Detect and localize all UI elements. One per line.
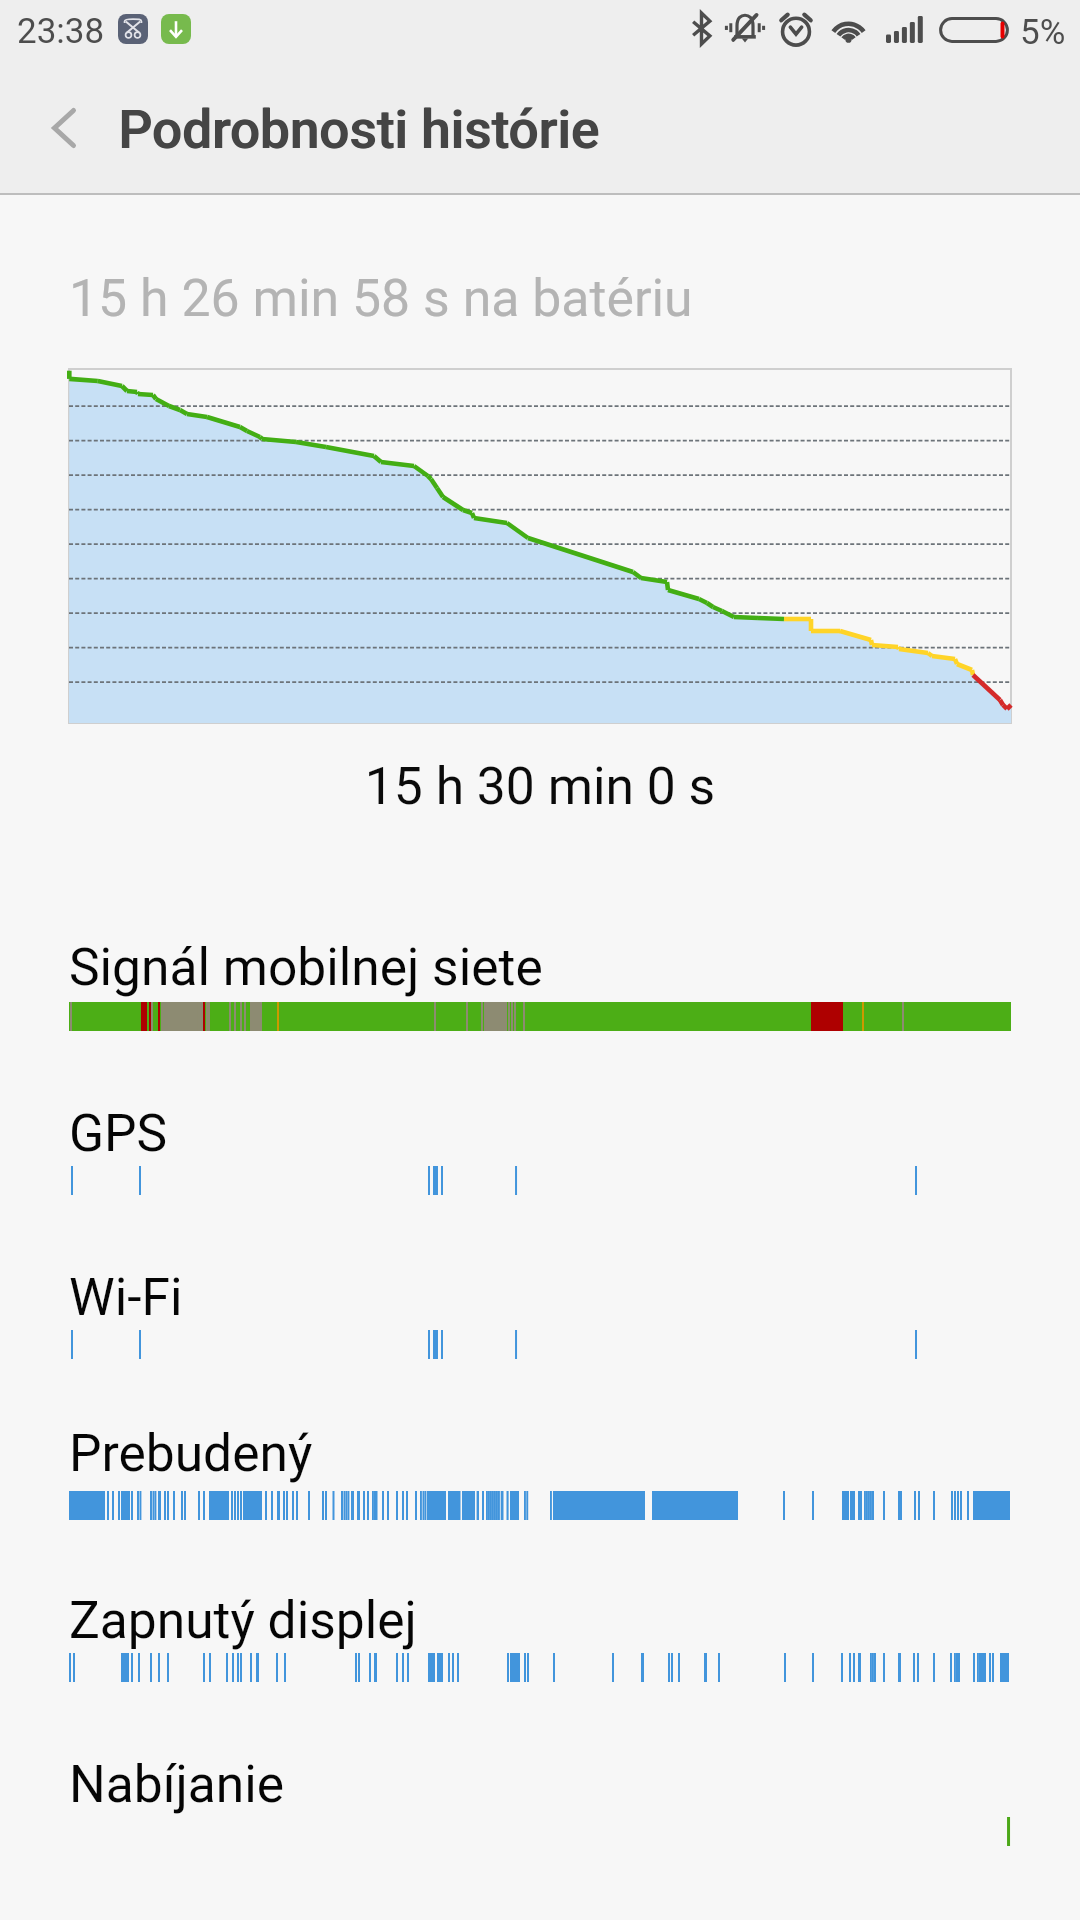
button[interactable]	[69, 930, 1011, 1031]
button[interactable]	[69, 1747, 1011, 1846]
staticText: Zapnutý displej	[69, 1590, 417, 1650]
button[interactable]	[69, 1583, 1011, 1682]
button[interactable]: Back	[32, 97, 96, 161]
button[interactable]: Battery level history chart	[69, 369, 1011, 723]
button[interactable]	[69, 1260, 1011, 1358]
staticText: GPS	[69, 1103, 168, 1163]
staticText: Podrobnosti histórie	[118, 99, 599, 161]
staticText: Signál mobilnej siete	[69, 937, 543, 997]
staticText: Podrobnosti histórie	[119, 99, 600, 161]
staticText: Wi-Fi	[69, 1267, 183, 1327]
button[interactable]	[69, 1096, 1011, 1194]
staticText: 15 h 30 min 0 s	[0, 756, 1080, 816]
staticText: 5%	[1020, 12, 1066, 53]
staticText: Nabíjanie	[69, 1754, 285, 1814]
staticText: 23:38	[17, 11, 105, 52]
staticText: 15 h 26 min 58 s na batériu	[69, 268, 693, 329]
button[interactable]	[69, 1416, 1011, 1520]
staticText: Prebudený	[69, 1423, 313, 1483]
